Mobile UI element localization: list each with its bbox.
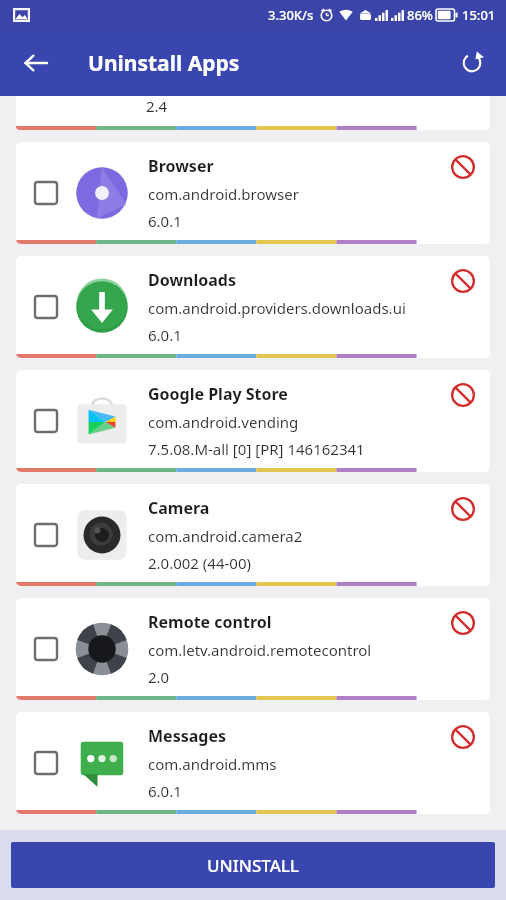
staticText: UNINSTALL xyxy=(207,854,299,877)
button[interactable]: Select Messages xyxy=(16,712,490,814)
staticText: Downloads xyxy=(148,269,236,291)
staticText: Browser xyxy=(148,155,214,177)
button[interactable]: Select Google Play Store xyxy=(16,370,490,472)
button[interactable]: Cannot uninstall Remote control xyxy=(442,602,484,644)
button[interactable]: Select Camera xyxy=(16,484,490,586)
button[interactable]: Cannot uninstall Downloads xyxy=(442,260,484,302)
button[interactable]: Refresh xyxy=(448,39,496,87)
button[interactable]: Select Google Play Store xyxy=(26,401,66,441)
button[interactable]: Select Downloads xyxy=(26,287,66,327)
staticText: Remote control xyxy=(148,611,272,633)
button[interactable]: Select Browser xyxy=(16,142,490,244)
button[interactable]: Cannot uninstall Google Play Store xyxy=(442,374,484,416)
button[interactable]: Select Remote control xyxy=(26,629,66,669)
staticText: com.android.providers.downloads.ui xyxy=(148,298,406,318)
staticText: Camera xyxy=(148,497,210,519)
staticText: com.android.vending xyxy=(148,412,299,432)
staticText: com.android.browser xyxy=(148,184,299,204)
staticText: com.android.camera2 xyxy=(148,526,303,546)
staticText: Messages xyxy=(148,725,226,747)
button[interactable]: Select Downloads xyxy=(16,256,490,358)
staticText: 6.0.1 xyxy=(148,781,182,801)
button[interactable]: Back xyxy=(12,39,60,87)
staticText: Uninstall Apps xyxy=(88,49,240,78)
staticText: 7.5.08.M-all [0] [PR] 146162341 xyxy=(148,439,365,459)
button[interactable]: 2.4 xyxy=(16,96,490,130)
button[interactable]: Select Browser xyxy=(26,173,66,213)
staticText: 86% xyxy=(407,6,433,24)
staticText: 6.0.1 xyxy=(148,325,182,345)
button[interactable]: UNINSTALL xyxy=(11,842,495,888)
staticText: 6.0.1 xyxy=(148,211,182,231)
button[interactable]: Select Camera xyxy=(26,515,66,555)
staticText: com.android.mms xyxy=(148,754,277,774)
button[interactable]: Cannot uninstall Browser xyxy=(442,146,484,188)
staticText: 15:01 xyxy=(462,6,496,24)
staticText: 2.4 xyxy=(146,96,168,116)
button[interactable]: Select Remote control xyxy=(16,598,490,700)
button[interactable]: Cannot uninstall Messages xyxy=(442,716,484,758)
button[interactable]: Cannot uninstall Camera xyxy=(442,488,484,530)
button[interactable]: Select Messages xyxy=(26,743,66,783)
staticText: Google Play Store xyxy=(148,383,288,405)
staticText: 2.0.002 (44-00) xyxy=(148,553,251,573)
staticText: 2.0 xyxy=(148,667,170,687)
staticText: com.letv.android.remotecontrol xyxy=(148,640,372,660)
staticText: 3.30K/s xyxy=(268,6,314,24)
